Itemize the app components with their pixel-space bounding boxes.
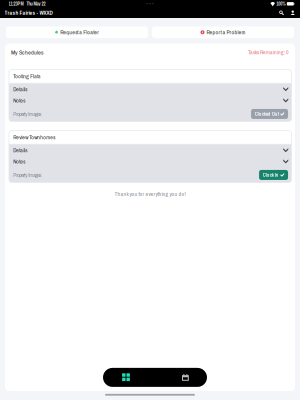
staticText: Notes (13, 97, 25, 104)
button[interactable]: Notes (9, 95, 291, 106)
staticText: 100% (276, 1, 285, 7)
staticText: Property Images (13, 171, 41, 179)
staticText: Report a Problem (206, 28, 245, 36)
staticText: Details (13, 146, 27, 154)
staticText: Tasks Remaining: 0 (248, 48, 289, 56)
staticText: Property Images (13, 110, 41, 118)
button[interactable]: Notes (9, 156, 291, 167)
staticText: Clocked Out (255, 110, 279, 117)
button[interactable]: Report a Problem (152, 26, 294, 38)
staticText: Notes (13, 158, 25, 165)
button[interactable]: Request a Floater (6, 26, 148, 38)
staticText: Details (13, 85, 27, 93)
staticText: Tooting Flats (13, 72, 40, 80)
button[interactable]: Details (9, 145, 291, 156)
button[interactable]: Account (287, 8, 298, 18)
staticText: Review Townhomes (13, 133, 55, 141)
button[interactable]: Clock In (259, 170, 288, 180)
button[interactable]: Details (9, 84, 291, 95)
button[interactable]: Clocked Out (251, 109, 288, 119)
staticText: 11:23PM Thu May 22 (8, 1, 45, 7)
staticText: Request a Floater (60, 28, 99, 36)
button[interactable]: Search (275, 8, 287, 18)
staticText: My Schedules (11, 48, 44, 56)
button[interactable]: Schedule (159, 368, 211, 387)
staticText: Trash Fairies - WXXD (4, 9, 52, 16)
staticText: Thank you for everything you do! (114, 190, 185, 198)
staticText: Clock In (263, 171, 279, 178)
button[interactable]: Dashboard (100, 368, 152, 387)
